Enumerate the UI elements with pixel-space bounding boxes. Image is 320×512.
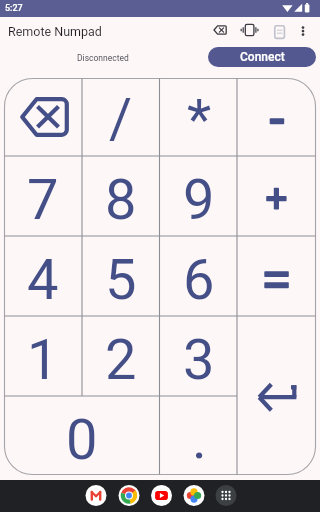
button[interactable]: 5 (82, 236, 160, 316)
staticText: 7 (27, 167, 59, 233)
staticText: 9 (183, 167, 215, 233)
button[interactable]: . (160, 396, 238, 475)
staticText: 5:27 (5, 3, 23, 14)
staticText: Remote Numpad (8, 24, 102, 39)
staticText: 4 (27, 247, 59, 313)
button[interactable] (236, 17, 264, 45)
button[interactable] (293, 17, 315, 45)
button[interactable]: 9 (160, 156, 238, 236)
staticText: 2 (105, 327, 137, 393)
button[interactable]: 8 (82, 156, 160, 236)
button[interactable] (237, 316, 316, 475)
button[interactable]: 0 (4, 396, 160, 475)
button[interactable] (237, 236, 316, 316)
staticText: 3 (183, 327, 215, 393)
staticText: 8 (105, 167, 137, 233)
button[interactable] (237, 78, 316, 156)
button[interactable] (237, 156, 316, 236)
staticText: 6 (183, 247, 215, 313)
button[interactable]: 2 (82, 316, 160, 396)
button[interactable] (215, 485, 237, 507)
button[interactable]: 7 (4, 156, 82, 236)
staticText: 5 (105, 247, 137, 313)
button[interactable]: 6 (160, 236, 238, 316)
button[interactable] (206, 17, 234, 45)
button[interactable] (183, 485, 205, 507)
button[interactable]: 4 (4, 236, 82, 316)
staticText: Connect (240, 50, 285, 64)
button[interactable]: 1 (4, 316, 82, 396)
staticText: 1 (27, 327, 59, 393)
staticText: / (109, 86, 133, 152)
button[interactable]: 3 (160, 316, 238, 396)
button[interactable] (118, 485, 140, 507)
button[interactable]: Connect (208, 47, 316, 67)
button[interactable] (150, 485, 172, 507)
staticText: . (192, 406, 207, 472)
staticText: 0 (66, 407, 98, 473)
staticText: Disconnected (77, 53, 129, 63)
button[interactable] (85, 485, 107, 507)
button[interactable] (4, 78, 82, 156)
button[interactable] (266, 17, 294, 45)
staticText: * (187, 87, 212, 153)
button[interactable]: * (160, 78, 238, 156)
button[interactable]: / (82, 78, 160, 156)
